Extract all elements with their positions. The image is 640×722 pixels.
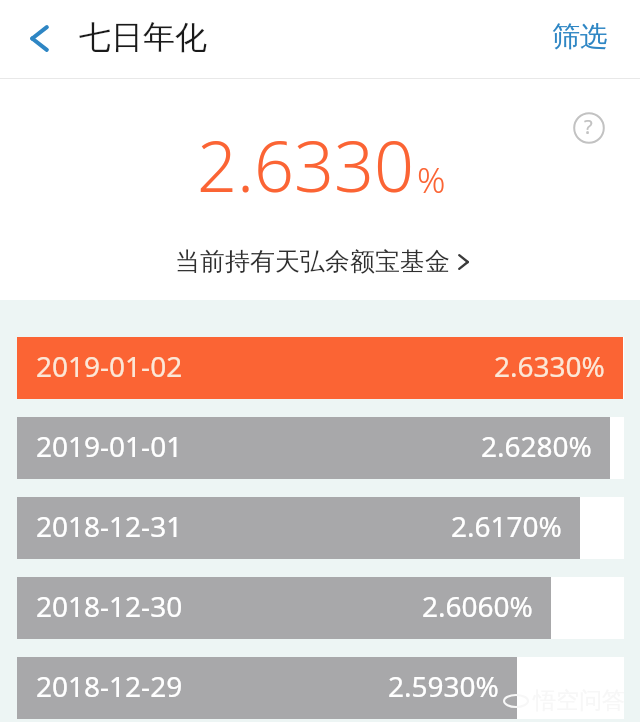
staticText: 悟空问答: [533, 686, 625, 715]
button[interactable]: 2019-01-01: [17, 417, 624, 479]
button[interactable]: Help: [557, 96, 620, 159]
staticText: 2.6060%: [422, 587, 533, 625]
button[interactable]: 2018-12-31: [17, 497, 624, 559]
button[interactable]: 2018-12-30: [17, 577, 624, 639]
staticText: 当前持有天弘余额宝基金: [175, 246, 450, 277]
staticText: 七日年化: [79, 17, 207, 57]
staticText: 2.6280%: [481, 427, 592, 465]
staticText: 2018-12-31: [36, 507, 183, 545]
staticText: ?: [584, 113, 593, 140]
button[interactable]: 当前持有天弘余额宝基金: [169, 241, 475, 282]
staticText: 2.6330: [197, 117, 414, 212]
staticText: %: [417, 156, 446, 204]
staticText: 2.5930%: [388, 667, 499, 705]
staticText: 2.6170%: [451, 507, 562, 545]
button[interactable]: 2019-01-02: [17, 337, 624, 399]
staticText: 2018-12-29: [36, 667, 183, 705]
staticText: 2019-01-02: [36, 347, 183, 385]
staticText: 2.6330%: [494, 347, 605, 385]
button[interactable]: Back: [8, 9, 66, 71]
button[interactable]: 筛选: [530, 7, 640, 66]
button[interactable]: 2018-12-29: [17, 657, 624, 719]
staticText: 筛选: [552, 19, 608, 54]
staticText: 2019-01-01: [36, 427, 183, 465]
staticText: 2018-12-30: [36, 587, 183, 625]
